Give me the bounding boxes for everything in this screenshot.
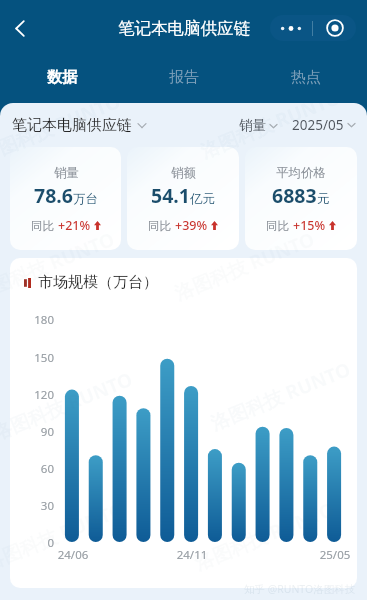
staticText: 笔记本电脑供应链 [118, 18, 250, 39]
staticText: 洛图科技 RUNTO [197, 103, 344, 164]
staticText: 洛图科技 RUNTO [171, 226, 318, 306]
staticText: 报告 [169, 68, 199, 87]
button[interactable]: Back [1, 9, 39, 47]
staticText: 60 [10, 461, 54, 477]
staticText: 2025/05 [292, 116, 344, 134]
staticText: 洛图科技 RUNTO [0, 103, 124, 168]
staticText: 同比 [31, 219, 54, 233]
staticText: 销量 [239, 117, 266, 134]
staticText: 亿元 [190, 191, 215, 207]
staticText: 销量 [54, 165, 79, 181]
button[interactable]: 销额 [127, 147, 239, 250]
staticText: 销额 [171, 165, 196, 181]
staticText: 同比 [148, 219, 171, 233]
button[interactable]: 数据 [0, 52, 123, 103]
staticText: 180 [10, 312, 54, 328]
staticText: +21% [58, 217, 91, 234]
button[interactable]: More options [270, 15, 356, 41]
staticText: 24/11 [176, 547, 208, 563]
button[interactable]: 笔记本电脑供应链 [12, 116, 146, 135]
staticText: 万台 [73, 191, 98, 207]
staticText: 元 [317, 191, 330, 207]
staticText: 同比 [266, 219, 289, 233]
staticText: 78.6 [34, 182, 73, 209]
staticText: 90 [10, 424, 54, 440]
button[interactable]: 热点 [245, 52, 367, 103]
staticText: 洛图科技 RUNTO [0, 226, 118, 306]
staticText: 0 [10, 535, 54, 549]
staticText: 30 [10, 498, 54, 514]
staticText: 洛图科技 RUNTO [0, 496, 128, 576]
button[interactable]: 销量 [10, 147, 121, 250]
staticText: 25/05 [319, 547, 351, 563]
staticText: 洛图科技 RUNTO [191, 496, 338, 576]
staticText: 6883 [272, 182, 317, 209]
button[interactable]: 报告 [123, 52, 245, 103]
button[interactable]: 销量 [239, 117, 277, 134]
staticText: 120 [10, 387, 54, 403]
staticText: 24/06 [57, 547, 89, 563]
staticText: 市场规模（万台） [38, 273, 158, 292]
staticText: 洛图科技 RUNTO [207, 356, 354, 436]
staticText: 笔记本电脑供应链 [12, 116, 132, 135]
staticText: 知乎 @RUNTO洛图科技 [244, 582, 356, 596]
button[interactable]: 平均价格 [245, 147, 357, 250]
staticText: 54.1 [151, 182, 190, 209]
staticText: 平均价格 [276, 165, 326, 181]
staticText: 150 [10, 350, 54, 366]
staticText: 洛图科技 RUNTO [0, 366, 136, 446]
button[interactable]: 2025/05 [292, 116, 355, 134]
staticText: +39% [175, 217, 208, 234]
staticText: 数据 [47, 68, 77, 87]
staticText: 热点 [291, 68, 321, 87]
staticText: +15% [293, 217, 326, 234]
